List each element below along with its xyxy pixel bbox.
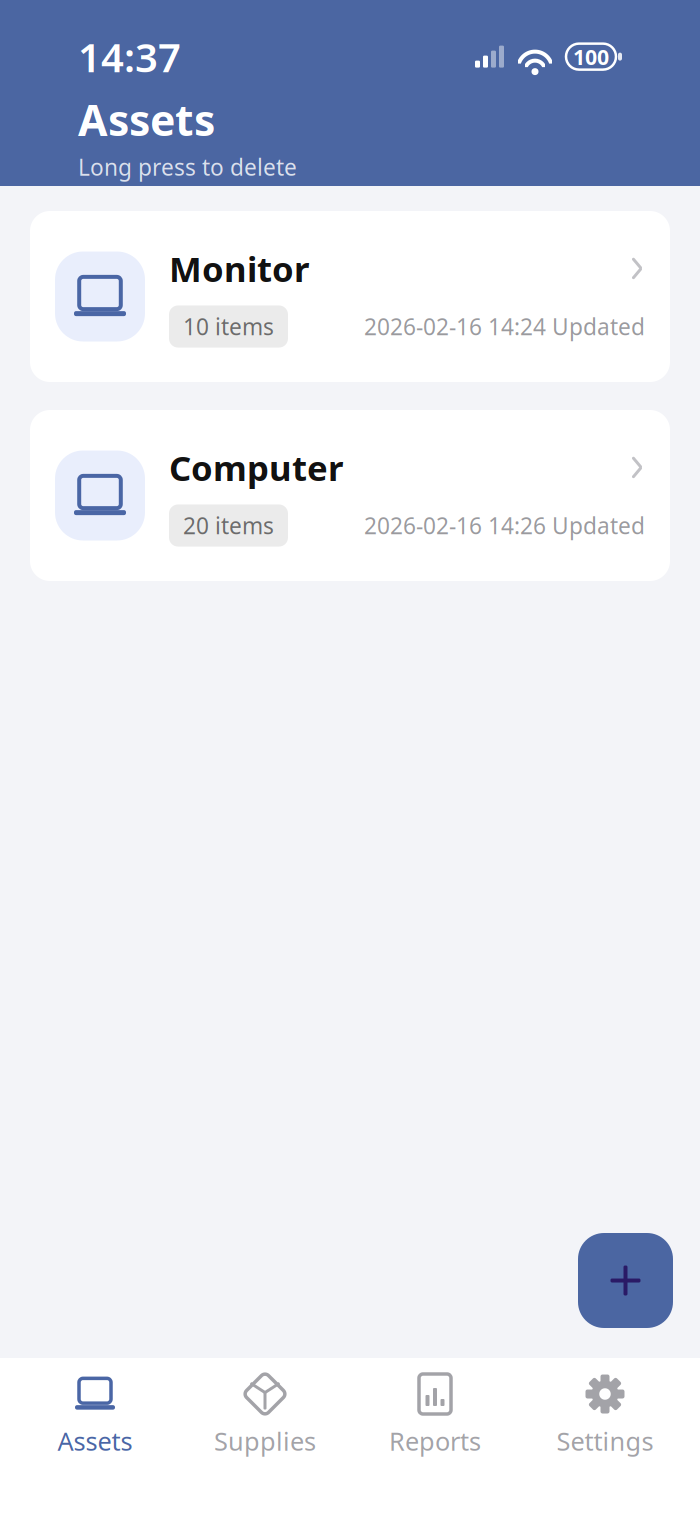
- staticText: 100: [573, 42, 609, 71]
- staticText: 14:37: [78, 30, 181, 83]
- button[interactable]: Computer: [30, 410, 670, 581]
- staticText: 2026-02-16 14:24 Updated: [364, 311, 645, 342]
- button[interactable]: Add asset: [578, 1233, 673, 1328]
- staticText: Computer: [169, 444, 343, 490]
- button[interactable]: Assets: [10, 1358, 180, 1468]
- staticText: 2026-02-16 14:26 Updated: [364, 510, 645, 541]
- staticText: Reports: [389, 1424, 481, 1458]
- staticText: Supplies: [214, 1424, 316, 1458]
- staticText: Settings: [556, 1424, 653, 1458]
- staticText: Assets: [57, 1424, 132, 1458]
- button[interactable]: Supplies: [180, 1358, 350, 1468]
- staticText: 20 items: [183, 510, 274, 541]
- staticText: Monitor: [169, 245, 309, 291]
- staticText: 10 items: [183, 311, 274, 342]
- staticText: Long press to delete: [78, 152, 297, 182]
- button[interactable]: Reports: [350, 1358, 520, 1468]
- button[interactable]: Settings: [520, 1358, 690, 1468]
- button[interactable]: Monitor: [30, 211, 670, 382]
- staticText: Assets: [78, 91, 215, 148]
